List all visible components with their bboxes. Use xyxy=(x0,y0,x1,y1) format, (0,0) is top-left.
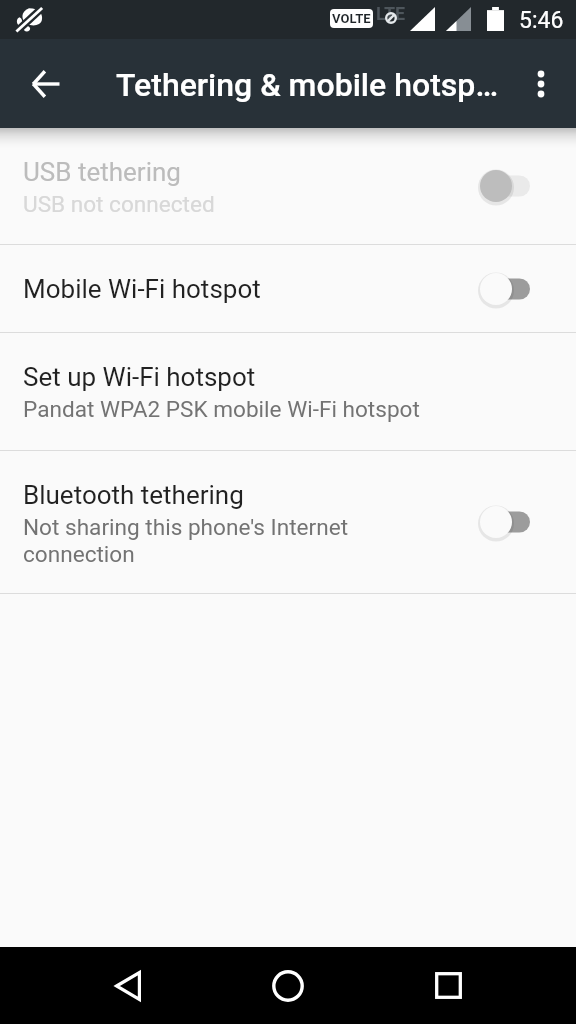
button[interactable]: Recent apps xyxy=(408,947,488,1024)
staticText: LTE xyxy=(376,3,406,24)
staticText: Mobile Wi-Fi hotspot xyxy=(23,274,261,304)
staticText: USB tethering xyxy=(23,157,181,187)
button[interactable]: Mobile Wi-Fi hotspot xyxy=(0,245,576,332)
button[interactable]: Navigate up xyxy=(18,56,74,112)
button[interactable]: Set up Wi-Fi hotspot xyxy=(0,333,576,450)
staticText: Tethering & mobile hotsp… xyxy=(116,66,498,104)
button[interactable]: Back xyxy=(88,947,168,1024)
staticText: Set up Wi-Fi hotspot xyxy=(23,362,256,392)
button[interactable]: Toggle xyxy=(475,156,551,216)
staticText: Not sharing this phone's Internet connec… xyxy=(23,514,423,568)
button[interactable]: Toggle xyxy=(475,259,551,319)
button[interactable]: Toggle xyxy=(475,492,551,552)
other: Priority mode off xyxy=(15,7,43,32)
staticText: VOLTE xyxy=(332,11,371,26)
staticText: Pandat WPA2 PSK mobile Wi-Fi hotspot xyxy=(23,396,420,422)
button[interactable]: Bluetooth tethering xyxy=(0,451,576,593)
staticText: 5:46 xyxy=(519,7,564,34)
staticText: USB not connected xyxy=(23,191,215,217)
staticText: Bluetooth tethering xyxy=(23,480,244,510)
button[interactable]: USB tethering xyxy=(0,128,576,244)
button[interactable]: More options xyxy=(513,56,569,112)
button[interactable]: Home xyxy=(248,947,328,1024)
